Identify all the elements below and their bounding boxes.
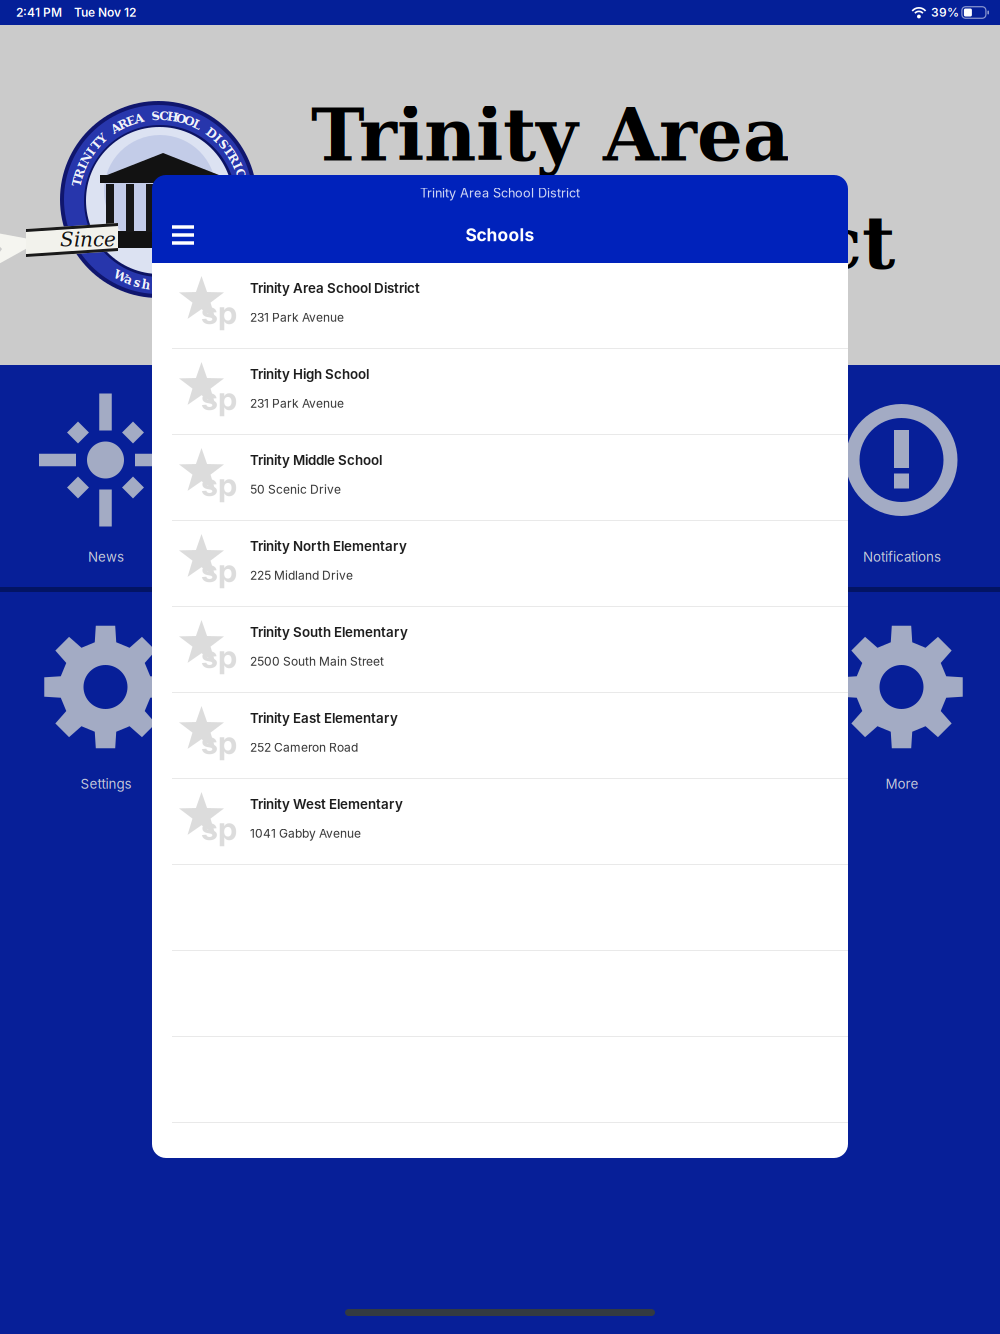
staticText: s [134,276,141,290]
staticText: S [151,109,160,123]
staticText: 2:41 PM [16,5,62,20]
staticText: W [114,269,127,283]
staticText: R [74,167,84,181]
staticText: Tue Nov 12 [74,5,136,20]
staticText: sp [201,552,237,590]
staticText: a [124,273,132,287]
staticText: T [73,175,82,189]
staticText: T [92,138,101,152]
staticText: n [195,269,204,283]
staticText: 231 Park Avenue [250,396,344,410]
staticText: 50 Scenic Drive [250,482,341,496]
staticText: Trinity Area School District [250,280,420,296]
staticText [202,121,206,135]
staticText: School District [294,201,895,286]
staticText: I [215,132,221,146]
button[interactable]: sp [152,435,848,521]
button[interactable]: Dining [396,592,595,814]
staticText: Trinity High School [250,366,369,382]
button[interactable]: News [0,365,197,587]
staticText: N [81,151,92,165]
staticText: sp [201,724,237,762]
button[interactable]: sp [152,607,848,693]
staticText: Sports [682,776,723,792]
staticText: Dining [484,776,524,792]
staticText: I [88,144,94,158]
staticText: S [219,138,228,152]
staticText: Y [98,132,107,146]
button[interactable]: sp [152,349,848,435]
staticText: Calendar [277,549,333,565]
staticText: Settings [80,776,131,792]
staticText: H [167,110,178,124]
staticText: D [206,126,216,140]
staticText: 1041 Gabby Avenue [250,826,361,840]
staticText: R [228,151,238,165]
staticText: Since [60,228,116,251]
staticText: I [234,159,240,173]
staticText: Trinity Area School District [420,185,580,201]
staticText: Staff [290,776,319,792]
staticText: Trinity Middle School [250,452,382,468]
staticText: O [184,114,194,128]
staticText: 252 Cameron Road [250,740,358,754]
staticText: Trinity Area [311,93,790,178]
staticText: 225 Midland Drive [250,568,353,582]
button[interactable]: sp [152,263,848,349]
staticText: Trinity East Elementary [250,710,398,726]
staticText: 2500 South Main Street [250,654,384,668]
button[interactable]: sp [152,779,848,865]
staticText: h [142,278,151,292]
staticText: sp [201,466,237,504]
staticText: sp [201,294,237,332]
staticText: Trinity South Elementary [250,624,408,640]
staticText: C [235,167,245,181]
staticText: sp [201,380,237,418]
staticText: Notifications [863,549,941,565]
staticText: sp [201,638,237,676]
staticText: E [126,114,135,128]
button[interactable]: More [794,592,993,814]
staticText: R [118,117,128,131]
staticText: News [88,549,124,565]
staticText: A [135,112,144,126]
staticText: Trinity West Elementary [250,796,403,812]
staticText: C [159,109,169,123]
button[interactable]: Staff [197,592,396,814]
button[interactable]: Events [396,365,595,587]
button[interactable]: Menu [161,213,205,257]
staticText: O [176,112,186,126]
button[interactable]: Settings [0,592,197,814]
staticText: 39% [931,5,959,20]
staticText: sp [201,810,237,848]
button[interactable]: sp [152,521,848,607]
staticText: Schools [465,224,534,245]
staticText: L [193,117,201,131]
button[interactable]: Notifications [794,365,993,587]
button[interactable]: Calendar [197,365,396,587]
staticText: T [224,144,233,158]
button[interactable]: sp [152,693,848,779]
staticText: 231 Park Avenue [250,310,344,324]
staticText: A [111,121,120,135]
staticText: More [885,776,918,792]
staticText: Trinity North Elementary [250,538,407,554]
staticText: I [80,159,86,173]
